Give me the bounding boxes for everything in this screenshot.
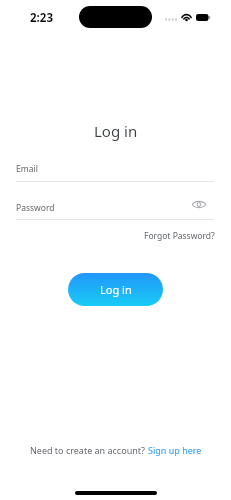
staticText: Log in <box>94 121 138 141</box>
staticText: Sign up here <box>148 444 202 456</box>
button[interactable]: Email <box>0 160 231 182</box>
staticText: Forgot Password? <box>144 230 215 242</box>
staticText: 2:23 <box>30 10 53 26</box>
button[interactable]: Show password <box>189 197 209 211</box>
staticText: Email <box>16 163 38 175</box>
staticText: Log in <box>100 282 132 297</box>
staticText: Password <box>16 202 55 214</box>
button[interactable]: Password <box>0 199 231 220</box>
button[interactable]: Forgot Password? <box>144 230 215 242</box>
button[interactable]: Sign up here <box>148 444 202 456</box>
button[interactable]: Log in <box>68 273 163 306</box>
staticText: Need to create an account? <box>30 444 148 456</box>
